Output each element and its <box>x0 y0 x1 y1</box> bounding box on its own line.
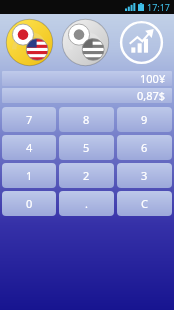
staticText: . <box>85 196 88 211</box>
button[interactable]: . <box>59 191 114 216</box>
staticText: 5 <box>83 140 90 155</box>
staticText: 3 <box>141 168 148 183</box>
staticText: 6 <box>141 140 148 155</box>
button[interactable]: 1 <box>2 163 56 188</box>
staticText: 100¥ <box>140 71 166 86</box>
button[interactable]: 4 <box>2 135 56 160</box>
button[interactable]: 3 <box>117 163 172 188</box>
button[interactable]: Exchange rate chart <box>114 15 169 69</box>
button[interactable]: C <box>117 191 172 216</box>
staticText: 17:17 <box>147 1 171 13</box>
staticText: 7 <box>26 112 33 127</box>
button[interactable]: 7 <box>2 107 56 132</box>
button[interactable]: 5 <box>59 135 114 160</box>
button[interactable]: 2 <box>59 163 114 188</box>
button[interactable]: 0,87$ <box>2 88 172 103</box>
staticText: 1 <box>26 168 33 183</box>
staticText: 0,87$ <box>137 88 166 103</box>
button[interactable]: 100¥ <box>2 71 172 86</box>
staticText: 2 <box>83 168 90 183</box>
button[interactable]: 6 <box>117 135 172 160</box>
staticText: C <box>141 196 148 211</box>
staticText: 8 <box>83 112 90 127</box>
button[interactable]: 8 <box>59 107 114 132</box>
button[interactable]: 0 <box>2 191 56 216</box>
button[interactable]: Convert yen to dollars <box>2 15 57 69</box>
button[interactable]: 9 <box>117 107 172 132</box>
button[interactable]: Convert dollars to yen <box>58 15 113 69</box>
staticText: 0 <box>26 196 33 211</box>
staticText: 4 <box>26 140 33 155</box>
staticText: 9 <box>141 112 148 127</box>
